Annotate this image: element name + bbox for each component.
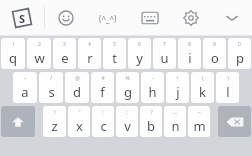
staticText: q [9, 49, 17, 67]
staticText: / [50, 75, 52, 82]
staticText: … [173, 109, 177, 116]
staticText: 9 [213, 41, 216, 48]
button[interactable]: ~ [13, 72, 37, 103]
staticText: r [87, 49, 93, 67]
staticText: x [76, 117, 83, 135]
button[interactable]: 3 [53, 38, 76, 69]
staticText: 1 [12, 41, 15, 48]
staticText: a [21, 83, 29, 101]
staticText: f [100, 83, 105, 101]
button[interactable]: 0 [228, 38, 251, 69]
staticText: o [211, 49, 219, 67]
button[interactable]: ) [216, 72, 239, 103]
staticText: " [78, 109, 81, 116]
staticText: (^_^) [99, 13, 117, 24]
button[interactable]: # [91, 72, 114, 103]
button[interactable]: Settings [170, 0, 211, 36]
staticText: k [199, 83, 206, 101]
button[interactable]: Shift [1, 106, 35, 137]
button[interactable]: Sogou input method [0, 0, 44, 36]
button[interactable]: @ [65, 72, 89, 103]
button[interactable]: - [141, 72, 164, 103]
staticText: ~ [24, 75, 27, 82]
button[interactable]: : [92, 106, 114, 137]
staticText: @ [75, 75, 80, 82]
button[interactable]: 9 [203, 38, 226, 69]
button[interactable]: 8 [178, 38, 201, 69]
staticText: : [102, 109, 104, 116]
staticText: 0 [238, 41, 241, 48]
staticText: s [48, 83, 55, 101]
button[interactable]: Hide keyboard [211, 0, 252, 36]
staticText: y [136, 49, 143, 67]
button[interactable]: ( [191, 72, 214, 103]
staticText: ! [54, 109, 56, 116]
staticText: g [124, 83, 132, 101]
button[interactable]: ? [140, 106, 162, 137]
staticText: b [147, 117, 155, 135]
staticText: t [112, 49, 117, 67]
staticText: ) [227, 75, 229, 82]
staticText: 5 [113, 41, 116, 48]
staticText: + [176, 75, 179, 82]
staticText: l [226, 83, 230, 101]
staticText: 3 [63, 41, 66, 48]
staticText: w [34, 49, 45, 67]
staticText: e [61, 49, 69, 67]
button[interactable]: ! [43, 106, 66, 137]
staticText: u [160, 49, 169, 67]
staticText: j [176, 83, 180, 101]
button[interactable]: + [166, 72, 189, 103]
button[interactable]: Emoji [45, 0, 87, 36]
staticText: 4 [88, 41, 91, 48]
button[interactable]: " [68, 106, 90, 137]
button[interactable]: 7 [153, 38, 176, 69]
staticText: p [236, 49, 244, 67]
staticText: c [100, 117, 107, 135]
button[interactable]: Keyboard layout [129, 0, 170, 36]
staticText: - [152, 75, 154, 82]
button[interactable]: 1 [1, 38, 25, 69]
button[interactable]: ~ [188, 106, 210, 137]
staticText: n [171, 117, 180, 135]
button[interactable]: 2 [27, 38, 51, 69]
staticText: i [188, 49, 192, 67]
staticText: 7 [163, 41, 166, 48]
button[interactable]: Kaomoji [87, 0, 129, 36]
staticText: 2 [38, 41, 41, 48]
button[interactable]: Backspace [218, 106, 251, 137]
staticText: m [193, 117, 206, 135]
staticText: h [148, 83, 157, 101]
button[interactable]: … [164, 106, 186, 137]
button[interactable]: 6 [128, 38, 151, 69]
button[interactable]: 4 [78, 38, 101, 69]
button[interactable]: ; [116, 106, 138, 137]
button[interactable]: 5 [103, 38, 126, 69]
staticText: S [19, 11, 26, 26]
staticText: # [101, 75, 105, 82]
staticText: d [73, 83, 81, 101]
staticText: v [124, 117, 131, 135]
staticText: ? [150, 109, 153, 116]
staticText: 6 [138, 41, 141, 48]
button[interactable]: / [39, 72, 63, 103]
button[interactable]: % [116, 72, 139, 103]
staticText: z [51, 117, 58, 135]
staticText: 8 [188, 41, 191, 48]
staticText: ( [202, 75, 204, 82]
staticText: ~ [198, 109, 201, 116]
staticText: ; [126, 109, 128, 116]
staticText: % [125, 75, 130, 82]
